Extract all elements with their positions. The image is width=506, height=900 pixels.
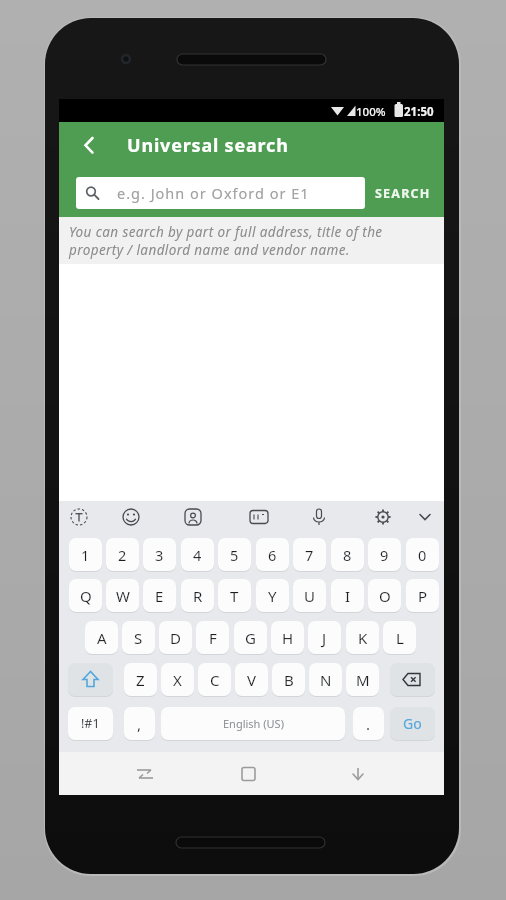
staticText: I: [345, 586, 351, 606]
staticText: K: [358, 628, 368, 648]
staticText: D: [170, 628, 181, 648]
button[interactable]: [329, 752, 389, 795]
button[interactable]: E: [143, 579, 176, 612]
button[interactable]: [83, 122, 103, 169]
button[interactable]: O: [368, 579, 401, 612]
button[interactable]: X: [161, 663, 194, 696]
button[interactable]: 8: [331, 538, 364, 571]
staticText: Go: [403, 714, 422, 733]
button[interactable]: ,: [124, 707, 155, 740]
staticText: P: [418, 586, 428, 606]
staticText: S: [134, 628, 143, 648]
staticText: 3: [155, 545, 164, 565]
button[interactable]: [119, 752, 179, 795]
button[interactable]: Z: [124, 663, 157, 696]
staticText: English (US): [223, 716, 284, 731]
button[interactable]: T: [218, 579, 251, 612]
button[interactable]: e.g. John or Oxford or E1: [76, 177, 365, 209]
staticText: E: [155, 586, 164, 606]
button[interactable]: P: [406, 579, 439, 612]
staticText: X: [173, 670, 182, 690]
button[interactable]: 6: [256, 538, 289, 571]
staticText: e.g. John or Oxford or E1: [117, 183, 310, 203]
staticText: 7: [305, 545, 314, 565]
button[interactable]: G: [234, 621, 267, 654]
button[interactable]: I: [331, 579, 364, 612]
staticText: M: [356, 670, 370, 690]
staticText: R: [193, 586, 203, 606]
button[interactable]: [68, 663, 113, 696]
button[interactable]: C: [198, 663, 231, 696]
staticText: 0: [418, 545, 427, 565]
button[interactable]: 7: [293, 538, 326, 571]
staticText: H: [282, 628, 294, 648]
staticText: 4: [193, 545, 202, 565]
button[interactable]: 2: [106, 538, 139, 571]
staticText: 8: [343, 545, 352, 565]
staticText: 5: [230, 545, 239, 565]
button[interactable]: F: [196, 621, 229, 654]
staticText: Universal search: [127, 133, 289, 158]
staticText: F: [209, 628, 217, 648]
staticText: 1: [81, 545, 90, 565]
staticText: G: [245, 628, 256, 648]
staticText: A: [97, 628, 107, 648]
staticText: Z: [136, 670, 145, 690]
staticText: 2: [118, 545, 127, 565]
button[interactable]: 5: [218, 538, 251, 571]
staticText: !#1: [81, 715, 100, 732]
button[interactable]: Go: [390, 707, 435, 740]
button[interactable]: B: [272, 663, 305, 696]
staticText: You can search by part or full address, …: [69, 223, 383, 259]
button[interactable]: K: [346, 621, 379, 654]
staticText: SEARCH: [375, 185, 431, 202]
button[interactable]: 1: [69, 538, 102, 571]
button[interactable]: .: [353, 707, 384, 740]
button[interactable]: Q: [69, 579, 102, 612]
staticText: B: [284, 670, 294, 690]
button[interactable]: S: [122, 621, 155, 654]
staticText: O: [379, 586, 391, 606]
button[interactable]: [390, 663, 435, 696]
button[interactable]: M: [346, 663, 379, 696]
button[interactable]: [219, 752, 279, 795]
button[interactable]: U: [293, 579, 326, 612]
button[interactable]: 9: [368, 538, 401, 571]
staticText: 21:50: [404, 104, 434, 120]
staticText: ,: [137, 714, 142, 734]
button[interactable]: N: [309, 663, 342, 696]
staticText: C: [210, 670, 220, 690]
staticText: L: [396, 628, 404, 648]
button[interactable]: [161, 707, 345, 740]
button[interactable]: V: [235, 663, 268, 696]
button[interactable]: SEARCH: [370, 177, 436, 209]
button[interactable]: 4: [181, 538, 214, 571]
button[interactable]: Y: [256, 579, 289, 612]
staticText: U: [304, 586, 315, 606]
staticText: N: [320, 670, 332, 690]
button[interactable]: 3: [143, 538, 176, 571]
staticText: .: [366, 714, 371, 734]
staticText: 100%: [356, 104, 386, 120]
staticText: 9: [380, 545, 389, 565]
staticText: Q: [80, 586, 92, 606]
button[interactable]: A: [85, 621, 118, 654]
button[interactable]: L: [383, 621, 416, 654]
button[interactable]: J: [308, 621, 341, 654]
staticText: J: [322, 628, 327, 648]
button[interactable]: W: [106, 579, 139, 612]
button[interactable]: D: [159, 621, 192, 654]
staticText: W: [116, 586, 130, 606]
button[interactable]: 0: [406, 538, 439, 571]
button[interactable]: H: [271, 621, 304, 654]
button[interactable]: R: [181, 579, 214, 612]
button[interactable]: !#1: [68, 707, 113, 740]
staticText: V: [247, 670, 257, 690]
staticText: T: [230, 586, 239, 606]
staticText: 6: [268, 545, 277, 565]
staticText: Y: [268, 586, 277, 606]
